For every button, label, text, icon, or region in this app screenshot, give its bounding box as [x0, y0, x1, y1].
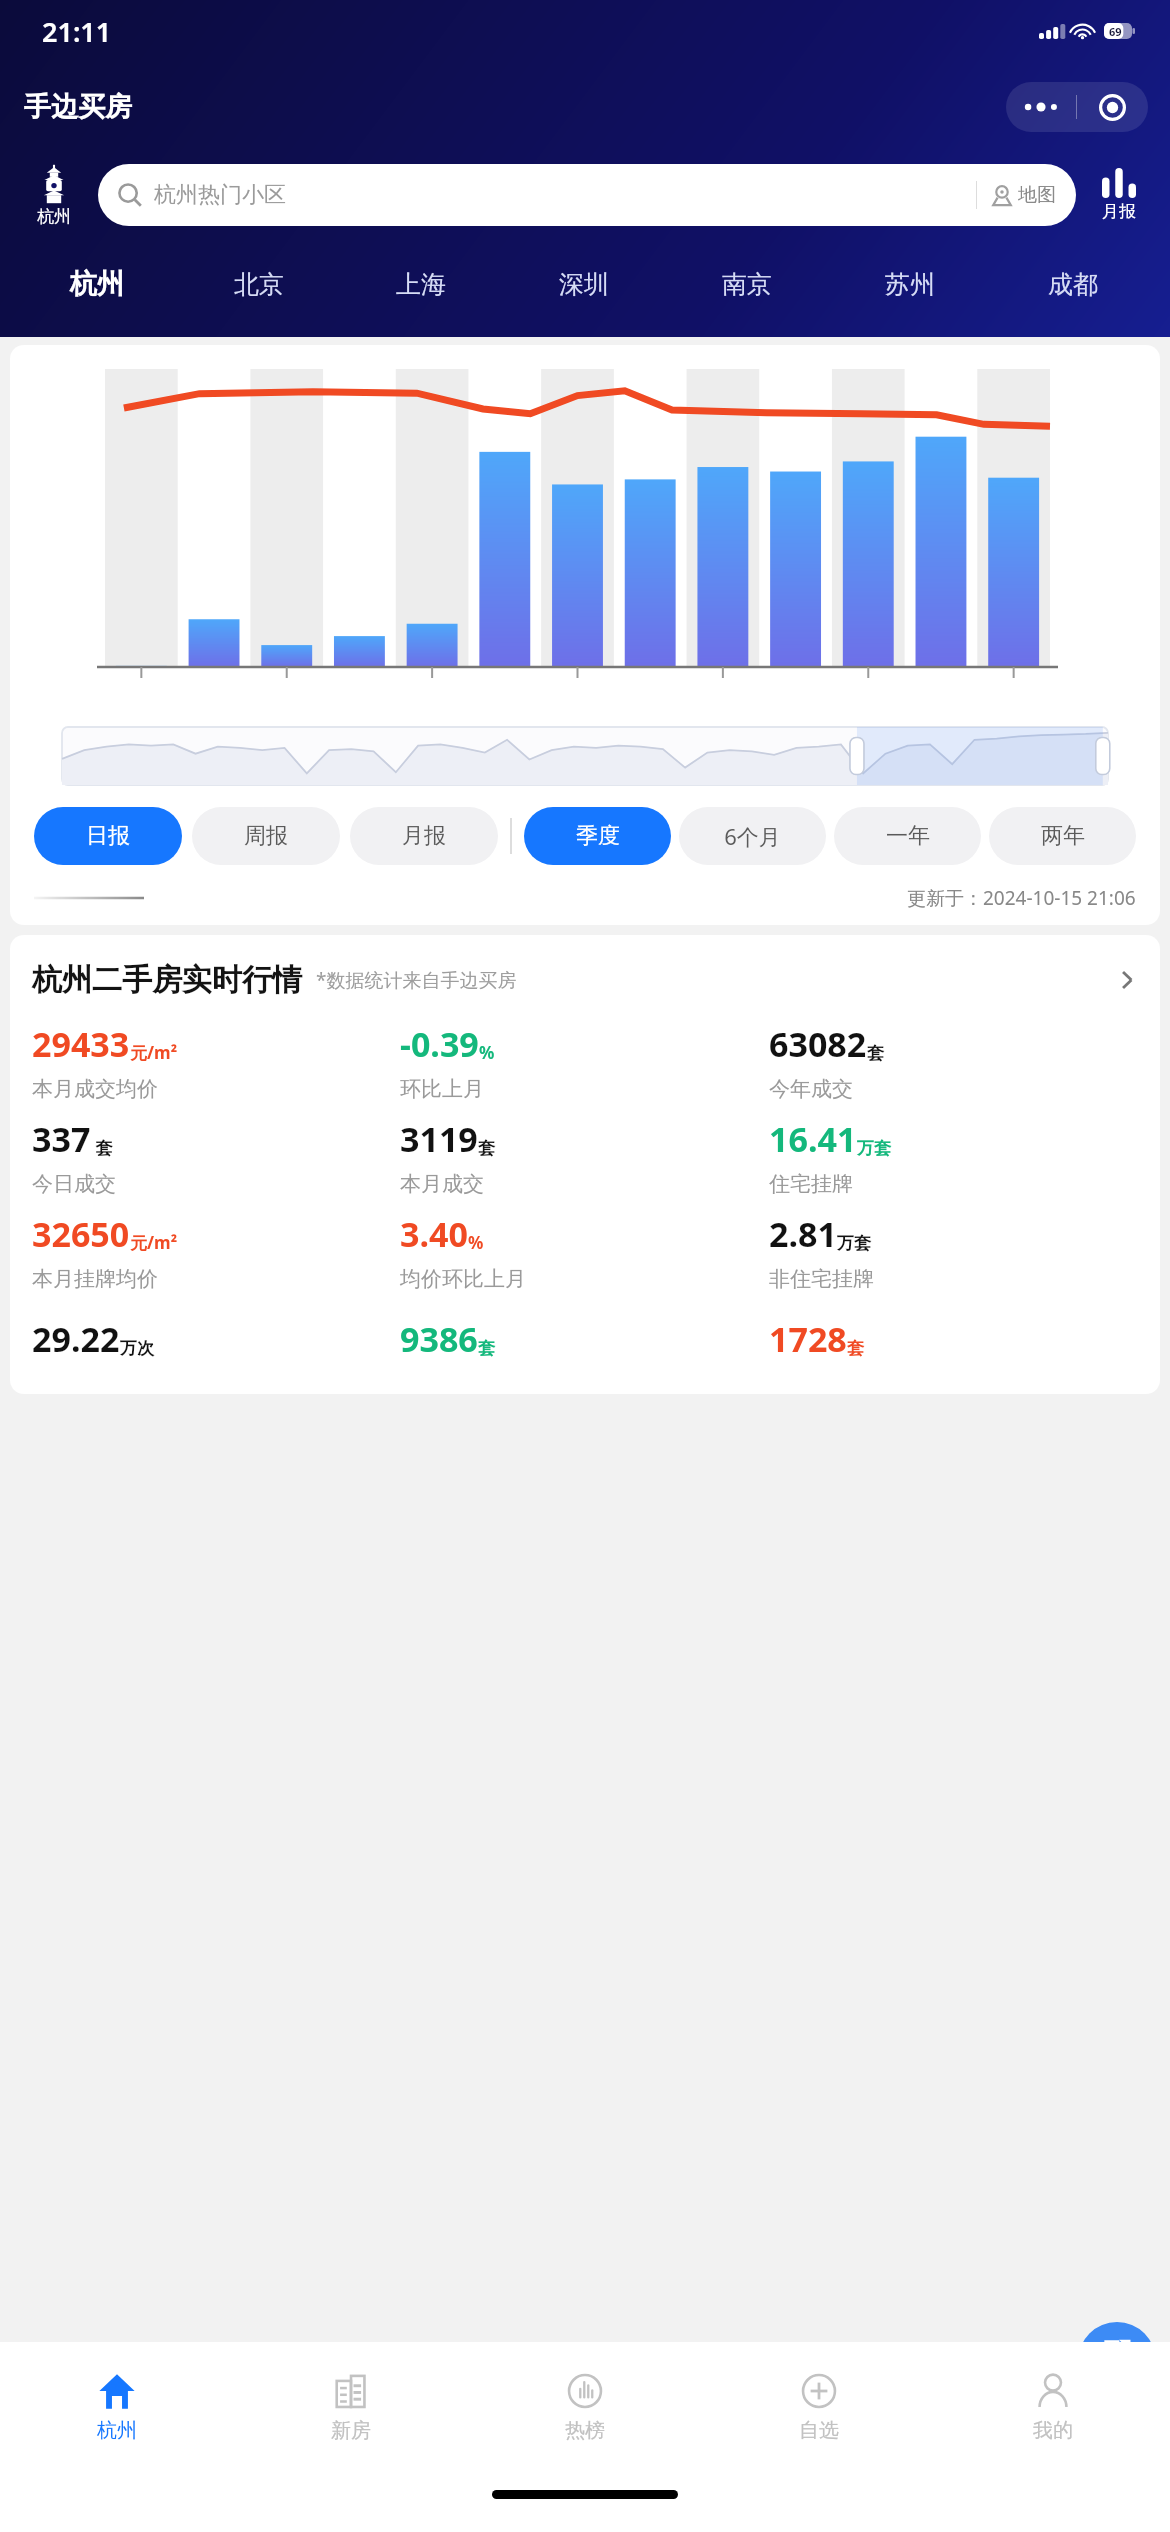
staticText: 北京	[234, 269, 284, 300]
staticText: 套	[867, 1043, 884, 1064]
staticText: 两年	[1041, 822, 1085, 850]
button[interactable]: 9386	[400, 1316, 769, 1376]
staticText: 环比上月	[400, 1076, 484, 1102]
button[interactable]: 63082	[769, 1021, 1138, 1116]
staticText: 季度	[576, 822, 620, 850]
button[interactable]: Close	[1077, 82, 1148, 132]
staticText: 今日成交	[32, 1171, 116, 1197]
staticText: 元/m²	[130, 1231, 178, 1254]
button[interactable]: 南京	[665, 248, 828, 320]
staticText: 9386	[400, 1316, 478, 1362]
staticText: 更新于：2024-10-15 21:06	[907, 885, 1136, 911]
button[interactable]: 我的	[936, 2342, 1170, 2470]
button[interactable]: 2.81	[769, 1211, 1138, 1306]
button[interactable]: 杭州二手房实时行情	[32, 961, 1138, 999]
staticText: 手边买房	[24, 90, 132, 124]
button[interactable]: 热榜	[468, 2342, 702, 2470]
button[interactable]: More	[1006, 82, 1076, 132]
staticText: 2.81	[769, 1211, 837, 1257]
staticText: 苏州	[885, 269, 935, 300]
staticText: 均价环比上月	[400, 1266, 526, 1292]
staticText: 日报	[86, 822, 130, 850]
staticText: 杭州	[70, 267, 124, 301]
button[interactable]: 3.40	[400, 1211, 769, 1306]
button[interactable]: -0.39	[400, 1021, 769, 1116]
staticText: 杭州热门小区	[154, 181, 286, 209]
staticText: 29433	[32, 1021, 130, 1067]
button[interactable]: 32650	[32, 1211, 400, 1306]
button[interactable]: 16.41	[769, 1116, 1138, 1211]
staticText: 月报	[402, 822, 446, 850]
button[interactable]: 6个月	[679, 807, 826, 865]
staticText: -0.39	[400, 1021, 479, 1067]
button[interactable]: 杭州热门小区	[98, 164, 1076, 226]
staticText: 6个月	[724, 821, 781, 851]
staticText: 63082	[769, 1021, 867, 1067]
staticText: %	[468, 1231, 484, 1254]
staticText: 万套	[857, 1138, 891, 1159]
button[interactable]: 一年	[834, 807, 981, 865]
button[interactable]: 苏州	[828, 248, 991, 320]
staticText: 29.22	[32, 1316, 120, 1362]
button[interactable]: 新房	[234, 2342, 468, 2470]
staticText: *数据统计来自手边买房	[316, 967, 517, 993]
staticText: 成都	[1048, 269, 1098, 300]
staticText: 万次	[120, 1338, 154, 1359]
staticText: %	[479, 1041, 495, 1064]
button[interactable]: 周报	[192, 807, 340, 865]
button[interactable]: 337	[32, 1116, 400, 1211]
button[interactable]: 两年	[989, 807, 1136, 865]
staticText: 杭州二手房实时行情	[32, 961, 302, 999]
button[interactable]: 杭州	[16, 248, 178, 320]
staticText: 南京	[722, 269, 772, 300]
staticText: 非住宅挂牌	[769, 1266, 874, 1292]
staticText: 3119	[400, 1116, 478, 1162]
staticText: 热榜	[565, 2418, 605, 2443]
staticText: 深圳	[559, 269, 609, 300]
button[interactable]: 杭州	[0, 2342, 234, 2470]
button[interactable]: 上海	[340, 248, 502, 320]
staticText: 月报	[1102, 201, 1136, 222]
staticText: 套	[478, 1138, 495, 1159]
button[interactable]: 季度	[524, 807, 671, 865]
staticText: 杭州	[97, 2418, 137, 2443]
staticText: 上海	[396, 269, 446, 300]
button[interactable]: 自选	[702, 2342, 936, 2470]
staticText: 3.40	[400, 1211, 468, 1257]
staticText: 32650	[32, 1211, 130, 1257]
staticText: 元/m²	[130, 1041, 178, 1064]
button[interactable]: 1728	[769, 1316, 1138, 1376]
staticText: 16.41	[769, 1116, 857, 1162]
button[interactable]: 月报	[1086, 156, 1152, 234]
staticText: 套	[478, 1338, 495, 1359]
button[interactable]: 深圳	[502, 248, 665, 320]
staticText: 周报	[244, 822, 288, 850]
staticText: 1728	[769, 1316, 847, 1362]
button[interactable]: 3119	[400, 1116, 769, 1211]
staticText: 我的	[1033, 2418, 1073, 2443]
button[interactable]: 日报	[34, 807, 182, 865]
button[interactable]: 地图	[991, 164, 1056, 226]
button[interactable]: 杭州	[18, 156, 90, 234]
staticText: 本月成交	[400, 1171, 484, 1197]
button[interactable]: 29433	[32, 1021, 400, 1116]
staticText: 杭州	[37, 206, 71, 227]
staticText: 套	[91, 1136, 113, 1159]
staticText: 新房	[331, 2418, 371, 2443]
staticText: 地图	[1018, 183, 1056, 207]
staticText: 今年成交	[769, 1076, 853, 1102]
staticText: 万套	[837, 1233, 871, 1254]
staticText: 自选	[799, 2418, 839, 2443]
button[interactable]: 月报	[350, 807, 498, 865]
staticText: 一年	[886, 822, 930, 850]
button[interactable]: 北京	[178, 248, 340, 320]
staticText: 套	[847, 1338, 864, 1359]
button[interactable]: 成都	[991, 248, 1154, 320]
button[interactable]: 分享	[1078, 2322, 1156, 2400]
staticText: 337	[32, 1116, 91, 1162]
staticText: 69	[1109, 24, 1122, 39]
staticText: 21:11	[42, 13, 112, 50]
button[interactable]: 29.22	[32, 1316, 400, 1376]
staticText: 本月挂牌均价	[32, 1266, 158, 1292]
